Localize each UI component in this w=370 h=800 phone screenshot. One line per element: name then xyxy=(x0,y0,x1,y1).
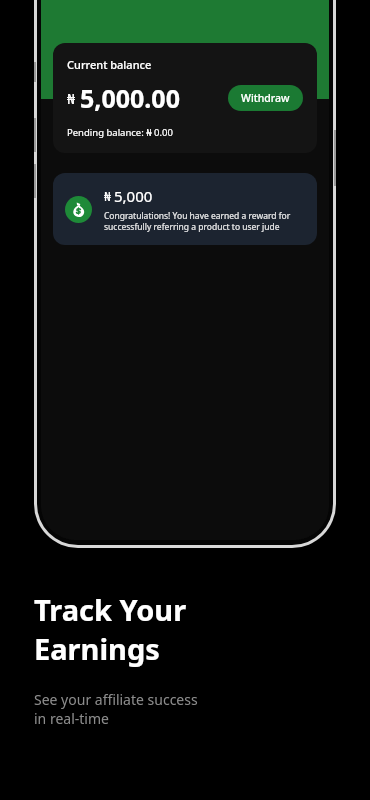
staticText: ₦ xyxy=(67,89,76,108)
staticText: Withdraw xyxy=(241,91,290,105)
staticText: Pending balance: ₦ 0.00 xyxy=(67,126,173,139)
staticText: Track Your xyxy=(34,590,187,629)
button[interactable]: Withdraw xyxy=(228,85,303,111)
staticText: in real-time xyxy=(34,709,109,728)
button[interactable]: ₦ xyxy=(53,173,317,245)
staticText: Congratulations! You have earned a rewar… xyxy=(104,210,305,232)
staticText: ₦ xyxy=(104,188,111,204)
staticText: Current balance xyxy=(67,57,152,72)
button[interactable]: Current balance xyxy=(53,43,317,153)
staticText: See your affiliate success xyxy=(34,690,198,709)
staticText: Earnings xyxy=(34,629,160,668)
staticText: 5,000 xyxy=(114,186,153,206)
staticText: 5,000.00 xyxy=(80,81,180,115)
